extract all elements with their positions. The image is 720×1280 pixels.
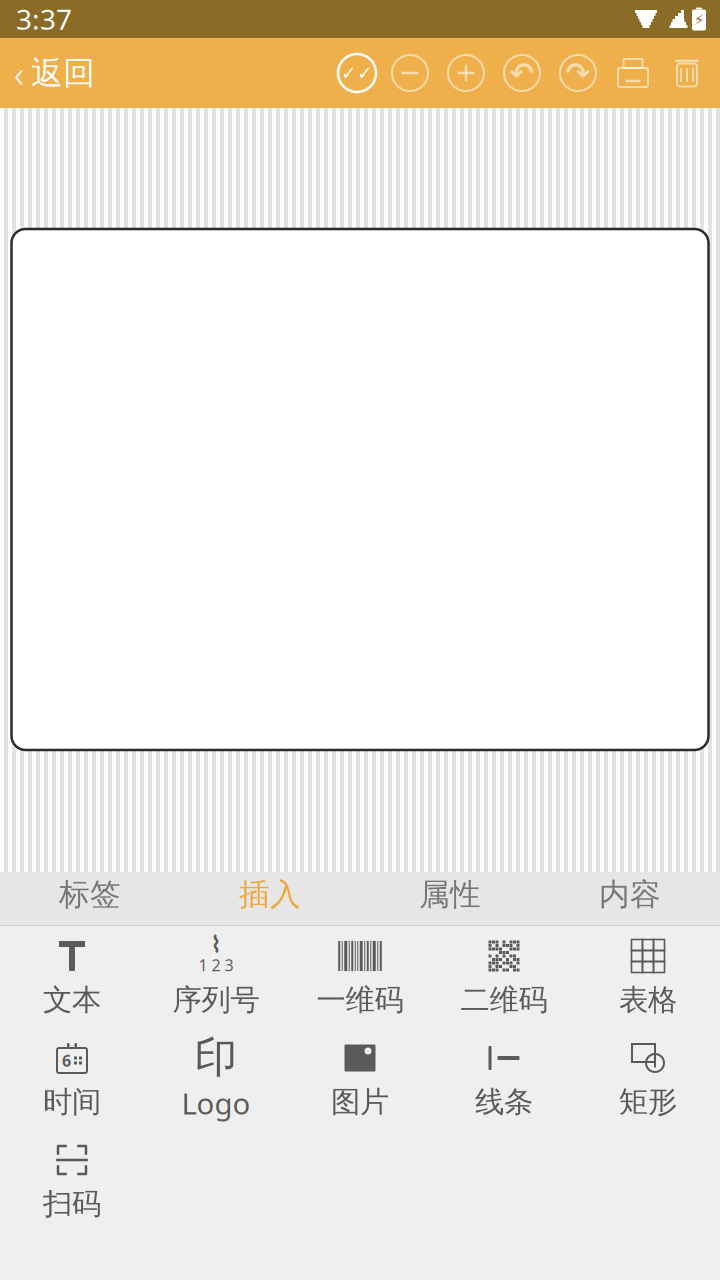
staticText: ⚡︎ bbox=[694, 12, 704, 28]
button[interactable]: 插入 bbox=[180, 872, 360, 925]
button[interactable]: Select all bbox=[332, 38, 382, 108]
staticText: 矩形 bbox=[619, 1084, 677, 1120]
staticText: ↶ bbox=[509, 56, 534, 90]
staticText: 3:37 bbox=[16, 0, 72, 38]
button[interactable]: 内容 bbox=[540, 872, 720, 925]
button[interactable]: 矩形 bbox=[576, 1028, 720, 1130]
button[interactable]: 图片 bbox=[288, 1028, 432, 1130]
staticText: Logo bbox=[181, 1083, 250, 1122]
button[interactable]: ‹ bbox=[0, 38, 107, 108]
button[interactable]: 扫码 bbox=[0, 1130, 144, 1232]
button[interactable]: Print bbox=[606, 38, 660, 108]
staticText: 文本 bbox=[43, 982, 101, 1018]
staticText: 序列号 bbox=[172, 982, 259, 1018]
button[interactable]: Delete bbox=[660, 38, 714, 108]
button[interactable]: 文本 bbox=[0, 926, 144, 1028]
button[interactable]: 属性 bbox=[360, 872, 540, 925]
button[interactable]: 6 bbox=[0, 1028, 144, 1130]
button[interactable]: 二维码 bbox=[432, 926, 576, 1028]
button[interactable]: 一维码 bbox=[288, 926, 432, 1028]
staticText: 图片 bbox=[331, 1084, 389, 1120]
staticText: 返回 bbox=[31, 53, 95, 93]
staticText: 属性 bbox=[419, 876, 481, 913]
staticText: 扫码 bbox=[43, 1186, 101, 1222]
staticText: ‹ bbox=[14, 48, 24, 98]
button[interactable]: 印 bbox=[144, 1028, 288, 1130]
staticText: ✓✓ bbox=[341, 62, 373, 84]
staticText: 印 bbox=[194, 1031, 237, 1084]
staticText: 插入 bbox=[239, 876, 301, 913]
button[interactable]: 标签 bbox=[0, 872, 180, 925]
button[interactable]: Zoom in bbox=[438, 38, 494, 108]
staticText: 一维码 bbox=[316, 982, 403, 1018]
staticText: 线条 bbox=[475, 1084, 533, 1120]
staticText: 6 bbox=[62, 1050, 71, 1071]
staticText: 时间 bbox=[43, 1084, 101, 1120]
staticText: 标签 bbox=[59, 876, 121, 913]
staticText: ↷ bbox=[565, 56, 590, 90]
button[interactable]: ⌇ bbox=[144, 926, 288, 1028]
staticText: ⌇ bbox=[210, 931, 221, 957]
button[interactable]: Redo bbox=[550, 38, 606, 108]
staticText: 内容 bbox=[599, 876, 661, 913]
button[interactable]: Undo bbox=[494, 38, 550, 108]
button[interactable]: 线条 bbox=[432, 1028, 576, 1130]
button[interactable]: 表格 bbox=[576, 926, 720, 1028]
staticText: 二维码 bbox=[460, 982, 547, 1018]
button[interactable]: Zoom out bbox=[382, 38, 438, 108]
staticText: 表格 bbox=[619, 982, 677, 1018]
staticText: 1 2 3 bbox=[198, 954, 233, 976]
